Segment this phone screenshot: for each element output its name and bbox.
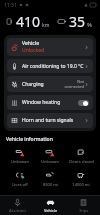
staticText: Horn and turn signals <box>22 117 84 124</box>
staticText: Vehicle <box>22 40 40 47</box>
staticText: 410 <box>16 12 41 31</box>
button[interactable]: Unknown <box>5 146 35 165</box>
staticText: Charging <box>22 81 64 88</box>
staticText: Air conditioning to 19.0 °C <box>22 63 84 70</box>
button[interactable]: Charging <box>7 76 93 92</box>
staticText: Window heating <box>22 99 78 106</box>
staticText: Unknown <box>41 159 59 164</box>
staticText: 35 <box>69 12 86 31</box>
button[interactable]: 14000 mi <box>66 169 96 188</box>
button[interactable]: 8300 mi <box>35 169 65 188</box>
staticText: Unlocked <box>22 47 45 54</box>
button[interactable]: Window heating toggle <box>78 100 89 106</box>
button[interactable]: Lives off <box>5 169 35 188</box>
button[interactable]: Assistant <box>0 196 34 215</box>
staticText: km <box>42 22 50 29</box>
button[interactable]: Vehicle <box>34 196 67 215</box>
staticText: 11:31 <box>4 2 17 9</box>
staticText: Trips <box>79 208 89 213</box>
button[interactable]: Doors closed <box>66 146 96 165</box>
staticText: Unknown <box>11 159 29 164</box>
staticText: Vehicle information <box>6 136 53 143</box>
button[interactable]: Vehicle Unlocked <box>7 38 93 56</box>
button[interactable]: Air conditioning <box>7 59 93 73</box>
staticText: Doors closed <box>69 159 94 164</box>
button[interactable]: Horn and turn signals <box>7 113 93 128</box>
staticText: 8300 mi <box>43 182 58 187</box>
staticText: Not connected <box>64 79 84 89</box>
button[interactable]: Unknown <box>35 146 65 165</box>
staticText: 14000 mi <box>72 182 90 187</box>
staticText: % <box>87 21 92 29</box>
staticText: Vehicle <box>44 208 58 213</box>
staticText: Lives off <box>12 182 28 187</box>
button[interactable]: Window heating <box>7 95 93 110</box>
button[interactable]: Trips <box>67 196 100 215</box>
staticText: Assistant <box>9 208 26 213</box>
